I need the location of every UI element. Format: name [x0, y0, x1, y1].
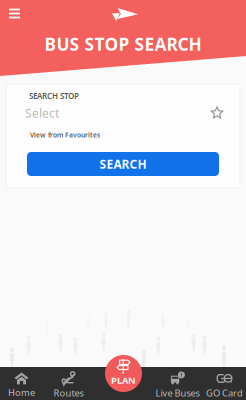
staticText: SEARCH STOP	[29, 91, 79, 101]
button[interactable]: GO Card	[203, 367, 246, 400]
button[interactable]: Menu	[8, 8, 21, 19]
staticText: GO Card	[206, 387, 243, 399]
button[interactable]: Routes	[43, 367, 94, 400]
button[interactable]: Live Buses	[152, 367, 203, 400]
staticText: Select	[25, 105, 59, 121]
button[interactable]: SEARCH	[27, 152, 219, 176]
button[interactable]: Add to favourites	[209, 105, 225, 121]
staticText: View from Favourites	[30, 131, 100, 139]
staticText: Home	[8, 386, 35, 399]
button[interactable]: Home	[0, 367, 43, 400]
button[interactable]: Plan a trip	[105, 355, 142, 392]
staticText: PLAN	[111, 374, 136, 386]
button[interactable]: View from Favourites	[30, 130, 150, 140]
staticText: BUS STOP SEARCH	[44, 32, 201, 55]
staticText: Live Buses	[155, 387, 199, 399]
staticText: SEARCH	[99, 156, 146, 172]
staticText: Routes	[53, 387, 83, 399]
